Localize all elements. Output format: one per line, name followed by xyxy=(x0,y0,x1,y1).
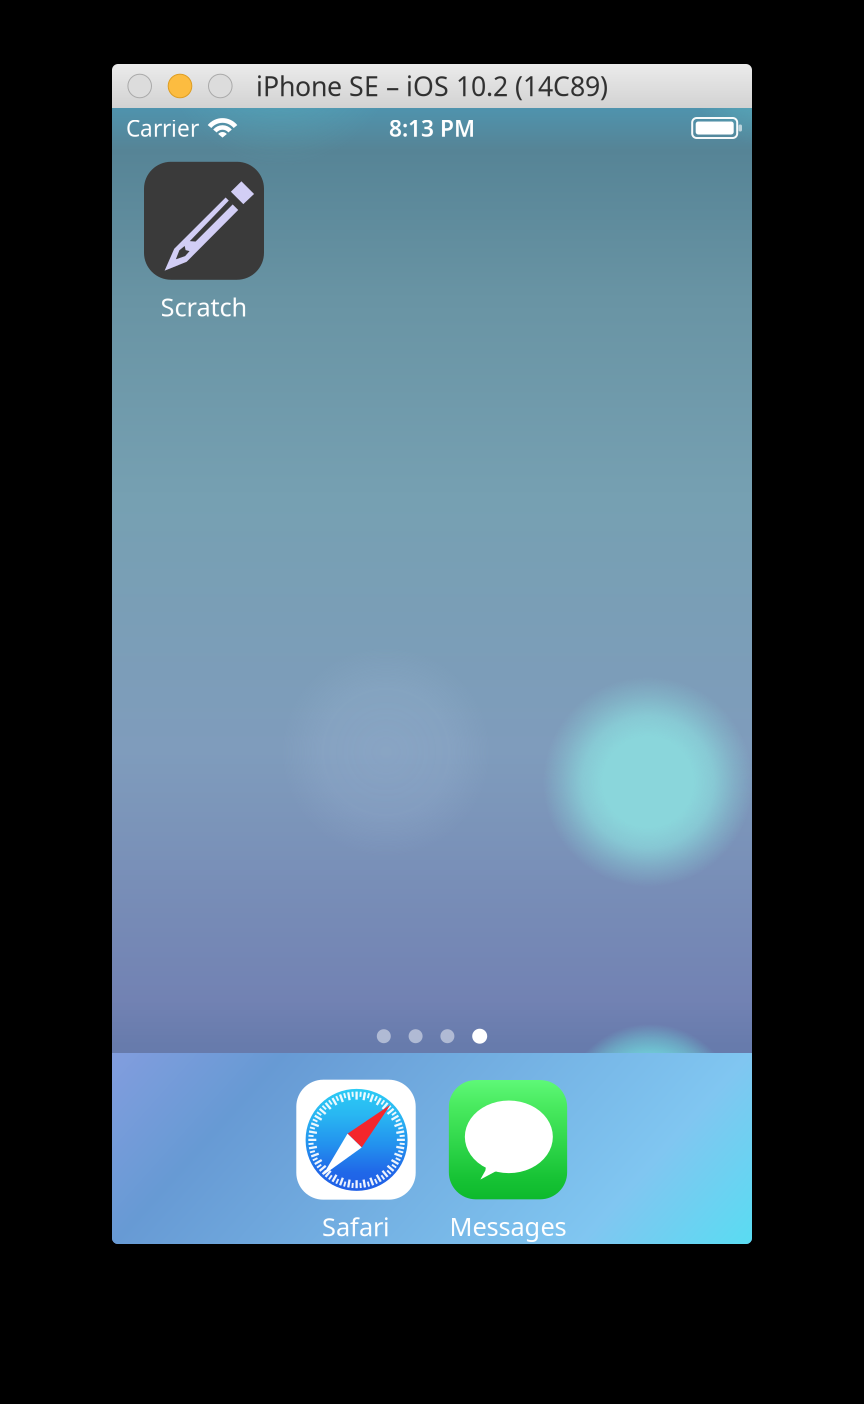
staticText: Messages xyxy=(449,1209,566,1243)
button[interactable]: Scratch xyxy=(144,162,264,323)
staticText: Carrier xyxy=(126,113,199,143)
staticText: Safari xyxy=(322,1210,390,1243)
button[interactable]: Close xyxy=(128,74,151,98)
button[interactable]: Safari xyxy=(296,1080,416,1243)
staticText: Scratch xyxy=(160,290,247,323)
staticText: 8:13 PM xyxy=(389,113,475,143)
staticText: iPhone SE – iOS 10.2 (14C89) xyxy=(256,68,608,104)
button[interactable]: Minimize xyxy=(168,74,192,98)
button[interactable]: Zoom xyxy=(208,74,232,98)
button[interactable]: Messages xyxy=(449,1080,567,1243)
